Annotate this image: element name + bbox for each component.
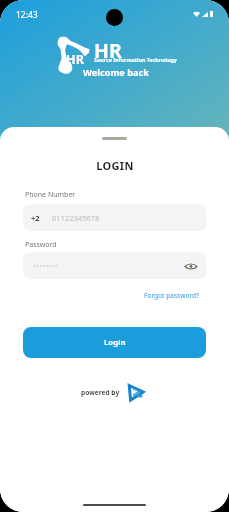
staticText: +2: [31, 213, 40, 223]
staticText: Welcome back: [83, 66, 149, 79]
button[interactable]: +2: [23, 204, 206, 231]
staticText: Password: [25, 240, 57, 250]
staticText: Login: [104, 337, 126, 348]
button[interactable]: Forgot password?: [144, 291, 199, 300]
staticText: 12:43: [16, 9, 38, 21]
button[interactable]: Login: [23, 327, 206, 358]
staticText: Source Information Technology: [94, 56, 177, 63]
staticText: LOGIN: [96, 158, 134, 173]
staticText: powered by: [81, 388, 120, 397]
staticText: HR: [66, 51, 84, 68]
button[interactable]: Show password: [23, 252, 206, 279]
staticText: HR: [94, 37, 122, 64]
button[interactable]: Show password: [184, 259, 198, 273]
staticText: 01122345678: [52, 213, 100, 223]
staticText: Phone Number: [25, 190, 76, 200]
